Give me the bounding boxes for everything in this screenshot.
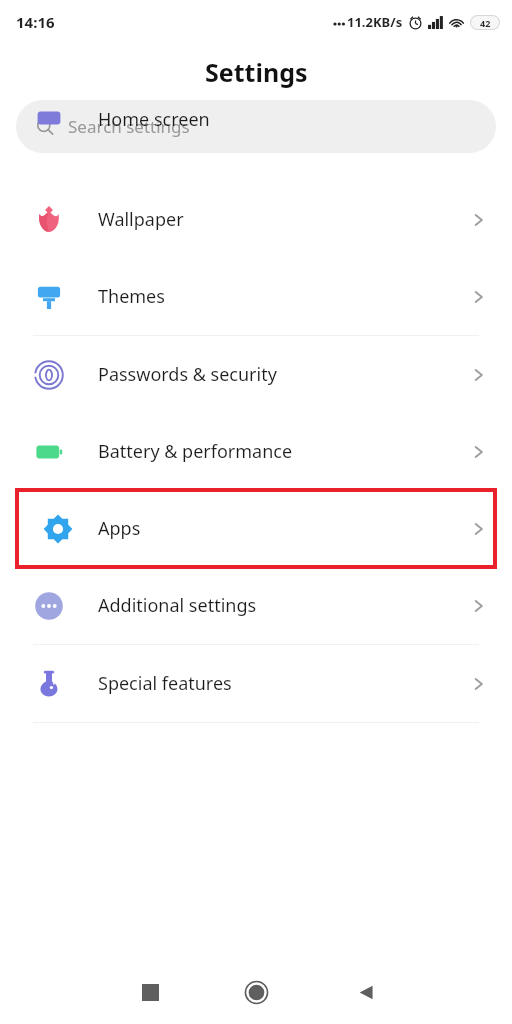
staticText: Special features: [98, 671, 468, 696]
staticText: Wallpaper: [98, 207, 468, 232]
other: Open: [468, 286, 490, 308]
staticText: Additional settings: [98, 593, 468, 618]
other: Open: [468, 441, 490, 463]
button[interactable]: Battery & performance: [0, 413, 512, 490]
staticText: Battery & performance: [98, 439, 468, 464]
button[interactable]: Themes: [0, 258, 512, 335]
staticText: Search settings: [68, 115, 190, 138]
button[interactable]: Special features: [0, 645, 512, 722]
other: Open: [468, 595, 490, 617]
button[interactable]: Home screen: [0, 107, 512, 129]
button[interactable]: Wallpaper: [0, 181, 512, 258]
button[interactable]: Search settings: [16, 100, 496, 153]
staticText: Home screen: [98, 107, 512, 129]
button[interactable]: Passwords & security: [0, 336, 512, 413]
button[interactable]: Back: [344, 970, 388, 1014]
button[interactable]: Recents: [128, 970, 172, 1014]
staticText: Apps: [98, 516, 468, 541]
other: Open: [468, 673, 490, 695]
staticText: Settings: [205, 55, 308, 89]
staticText: Themes: [98, 284, 468, 309]
staticText: Passwords & security: [98, 362, 468, 387]
other: Open: [468, 209, 490, 231]
other: Open: [468, 364, 490, 386]
button[interactable]: Apps: [17, 490, 495, 567]
button[interactable]: Additional settings: [0, 567, 512, 644]
staticText: 42: [480, 17, 491, 29]
other: Open: [468, 518, 490, 540]
staticText: 11.2KB/s: [347, 13, 403, 31]
staticText: 14:16: [16, 12, 55, 32]
button[interactable]: Home: [233, 969, 279, 1015]
